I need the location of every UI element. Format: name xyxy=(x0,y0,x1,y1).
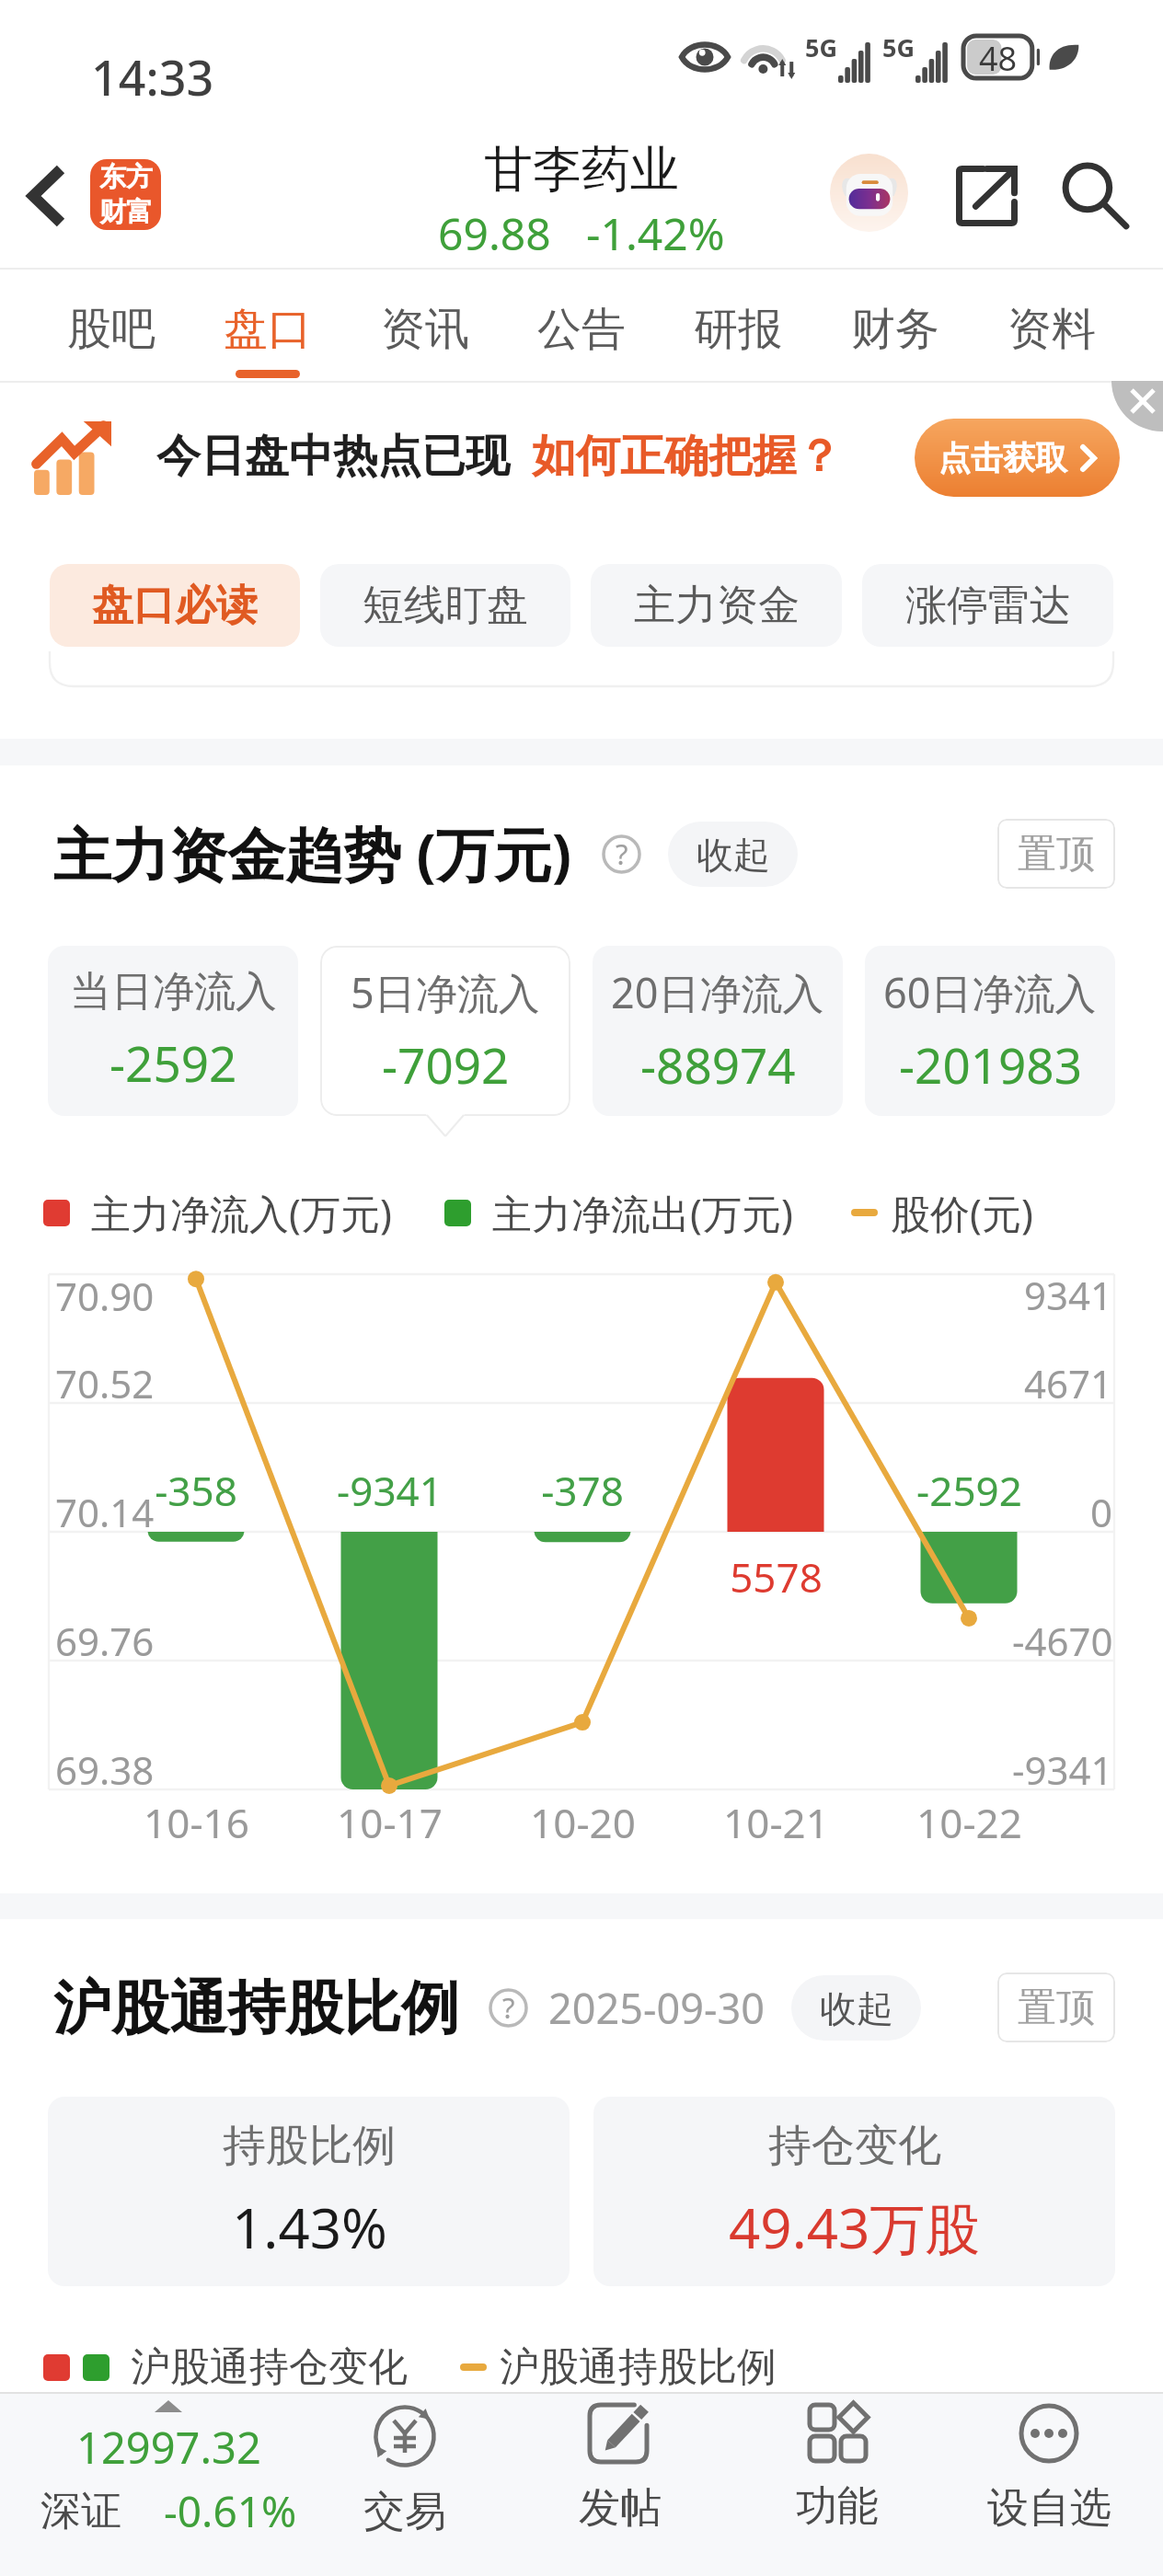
button[interactable]: 股吧 xyxy=(67,268,155,378)
staticText: 涨停雷达 xyxy=(905,580,1071,632)
button[interactable]: AI assistant xyxy=(830,154,908,232)
staticText: 5578 xyxy=(730,1549,823,1604)
staticText: 盘口 xyxy=(224,302,312,357)
button[interactable]: 涨停雷达 xyxy=(862,564,1113,647)
button[interactable]: Post xyxy=(519,2403,721,2535)
other: 5G signal xyxy=(805,30,871,83)
button[interactable]: 持股比例 xyxy=(48,2097,570,2286)
button[interactable]: Add to watchlist xyxy=(948,2403,1150,2535)
staticText: 70.14 xyxy=(55,1486,155,1538)
staticText: 60日净流入 xyxy=(883,964,1097,1020)
button[interactable]: 5日净流入 xyxy=(320,946,570,1116)
button[interactable]: 当日净流入 xyxy=(48,946,298,1116)
button[interactable]: 资讯 xyxy=(381,268,469,378)
staticText: 69.38 xyxy=(55,1743,155,1796)
staticText: 10-20 xyxy=(530,1795,636,1848)
staticText: 9341 xyxy=(1024,1269,1113,1321)
button[interactable]: 收起 xyxy=(668,822,798,887)
staticText: 12997.32 xyxy=(76,2418,261,2477)
staticText: 4671 xyxy=(1024,1357,1113,1409)
button[interactable]: 12997.32 xyxy=(21,2400,316,2540)
button[interactable]: Back xyxy=(6,155,88,237)
staticText: 今日盘中热点已现 xyxy=(156,429,510,484)
staticText: -9341 xyxy=(337,1463,443,1518)
button[interactable]: 主力资金 xyxy=(591,564,842,647)
staticText: 公告 xyxy=(537,302,626,357)
button[interactable]: 置顶 xyxy=(997,819,1115,889)
other: Functions xyxy=(808,2403,867,2462)
staticText: -358 xyxy=(155,1463,237,1518)
staticText: 盘口必读 xyxy=(92,580,258,632)
staticText: -88974 xyxy=(640,1031,796,1098)
button[interactable]: 盘口必读 xyxy=(50,564,300,647)
staticText: -2592 xyxy=(916,1463,1022,1518)
staticText: 财富 xyxy=(99,195,153,229)
staticText: 5G xyxy=(805,30,837,64)
staticText: 甘李药业 xyxy=(484,139,679,200)
staticText: 设自选 xyxy=(987,2482,1111,2535)
staticText: 发帖 xyxy=(579,2482,662,2535)
button[interactable]: 点击获取 xyxy=(915,419,1120,497)
staticText: 置顶 xyxy=(1018,830,1095,879)
staticText: 5G xyxy=(882,30,915,64)
staticText: 持仓变化 xyxy=(768,2119,941,2173)
staticText: ? xyxy=(502,1988,515,2027)
staticText: -7092 xyxy=(382,1031,510,1098)
staticText: 49.43万股 xyxy=(729,2190,981,2265)
other: 5G signal xyxy=(882,30,949,83)
staticText: 69.88 xyxy=(438,203,551,259)
staticText: -4670 xyxy=(1012,1615,1113,1667)
staticText: 10-22 xyxy=(916,1795,1022,1848)
button[interactable]: Trade xyxy=(304,2403,506,2538)
staticText: 资讯 xyxy=(381,302,469,357)
staticText: 功能 xyxy=(796,2480,879,2533)
staticText: 当日净流入 xyxy=(70,966,277,1018)
staticText: 交易 xyxy=(363,2486,446,2538)
staticText: 股价(元) xyxy=(891,1186,1033,1240)
button[interactable]: 研报 xyxy=(694,268,782,378)
button[interactable]: East Money home xyxy=(90,159,161,230)
staticText: 财务 xyxy=(851,302,939,357)
button[interactable]: Share xyxy=(939,149,1033,243)
staticText: 主力净流入(万元) xyxy=(91,1186,392,1240)
button[interactable]: 盘口 xyxy=(224,268,312,378)
staticText: -378 xyxy=(541,1463,624,1518)
button[interactable]: 持仓变化 xyxy=(593,2097,1115,2286)
button[interactable]: 60日净流入 xyxy=(865,946,1115,1116)
staticText: 70.52 xyxy=(55,1357,155,1409)
staticText: -2592 xyxy=(109,1029,237,1096)
staticText: 沪股通持股比例 xyxy=(53,1972,459,2044)
staticText: ? xyxy=(616,834,628,873)
other: Post xyxy=(588,2403,652,2464)
button[interactable]: Close banner xyxy=(1111,381,1163,431)
staticText: 东方 xyxy=(99,160,153,194)
staticText: 48 xyxy=(979,36,1018,78)
staticText: 10-16 xyxy=(144,1795,249,1848)
other: Eye protection xyxy=(679,41,731,73)
button[interactable]: Functions xyxy=(736,2403,938,2533)
button[interactable]: 置顶 xyxy=(997,1972,1115,2042)
button[interactable]: 短线盯盘 xyxy=(320,564,570,647)
other: Battery 48 percent xyxy=(963,36,1042,78)
button[interactable]: Search xyxy=(1049,149,1143,243)
other: Add to watchlist xyxy=(1019,2403,1079,2464)
button[interactable]: 20日净流入 xyxy=(593,946,843,1116)
staticText: 5日净流入 xyxy=(351,964,540,1020)
staticText: 2025-09-30 xyxy=(548,1980,765,2036)
button[interactable]: 财务 xyxy=(851,268,939,378)
staticText: 1.43% xyxy=(232,2190,387,2265)
button[interactable]: 收起 xyxy=(791,1975,921,2041)
other: Wi-Fi xyxy=(741,37,794,77)
staticText: 主力资金趋势 (万元) xyxy=(53,814,572,893)
button[interactable]: 资料 xyxy=(1008,268,1096,378)
staticText: 点击获取 xyxy=(938,438,1067,478)
staticText: 主力净流出(万元) xyxy=(492,1186,793,1240)
staticText: 研报 xyxy=(694,302,782,357)
staticText: 10-21 xyxy=(723,1795,829,1848)
staticText: 置顶 xyxy=(1018,1984,1095,2032)
staticText: 持股比例 xyxy=(223,2119,396,2173)
button[interactable]: 公告 xyxy=(537,268,626,378)
staticText: -201983 xyxy=(899,1031,1082,1098)
staticText: 如何正确把握？ xyxy=(532,429,841,484)
staticText: 短线盯盘 xyxy=(363,580,528,632)
